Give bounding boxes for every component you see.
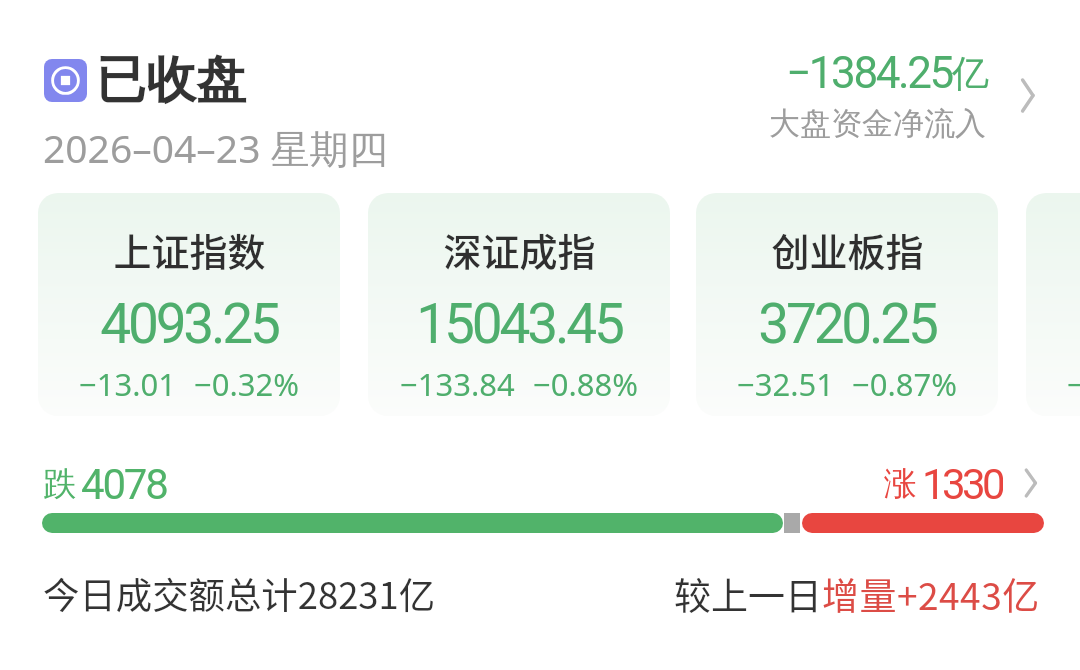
staticText: −32.51 — [737, 363, 834, 405]
staticText: 已收盘 — [96, 49, 246, 112]
button[interactable]: 沪深300 — [1026, 193, 1080, 416]
staticText: −0.32% — [194, 363, 299, 405]
button[interactable]: 上证指数 — [38, 193, 340, 416]
staticText: 15043.45 — [416, 292, 622, 356]
staticText: 较上一日 — [674, 567, 822, 621]
button[interactable]: 跌 — [0, 460, 1080, 506]
staticText: 3720.25 — [758, 292, 936, 356]
button[interactable]: 已收盘 — [44, 49, 246, 112]
button[interactable]: 涨跌家数分布 — [42, 513, 1044, 533]
button[interactable]: 深证成指 — [368, 193, 670, 416]
staticText: −133.84 — [400, 363, 515, 405]
button[interactable]: −1384.25 — [750, 36, 1050, 152]
staticText: 2026–04–23 星期四 — [43, 121, 388, 174]
staticText: 深证成指 — [443, 222, 596, 277]
staticText: 今日成交额总计28231亿 — [43, 567, 436, 620]
staticText: 创业板指 — [771, 222, 924, 277]
staticText: 跌 — [43, 463, 76, 505]
staticText: −19.72 — [1067, 363, 1080, 405]
staticText: 1330 — [922, 460, 1003, 506]
staticText: 4093.25 — [100, 292, 278, 356]
button[interactable]: 创业板指 — [696, 193, 998, 416]
staticText: −1384.25 — [786, 47, 952, 99]
other: 查看大盘资金净流入 — [1019, 80, 1037, 111]
staticText: −0.88% — [533, 363, 638, 405]
staticText: 涨 — [884, 463, 917, 505]
staticText: 4078 — [81, 460, 167, 506]
staticText: 增量+2443亿 — [822, 567, 1040, 621]
staticText: 上证指数 — [113, 222, 266, 277]
staticText: −0.87% — [852, 363, 957, 405]
staticText: 亿 — [952, 50, 989, 97]
staticText: −13.01 — [79, 363, 176, 405]
staticText: 大盘资金净流入 — [769, 104, 986, 143]
